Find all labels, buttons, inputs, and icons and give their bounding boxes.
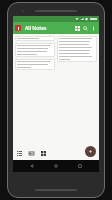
staticText: All Notes [25,25,47,32]
button[interactable]: Grid view [40,150,47,157]
button[interactable]: Search [81,24,89,32]
button[interactable] [15,59,55,70]
button[interactable]: Home [51,161,61,171]
button[interactable]: Card view [28,150,35,157]
button[interactable]: Open navigation drawer [15,25,21,31]
button[interactable] [57,36,97,62]
button[interactable]: Change view [73,24,81,32]
button[interactable]: More options [89,24,97,32]
button[interactable]: List view [16,150,23,157]
button[interactable] [15,36,55,41]
button[interactable]: Back [27,161,37,171]
button[interactable]: New note [85,146,96,157]
button[interactable]: Recent apps [75,161,85,171]
button[interactable] [15,43,55,57]
